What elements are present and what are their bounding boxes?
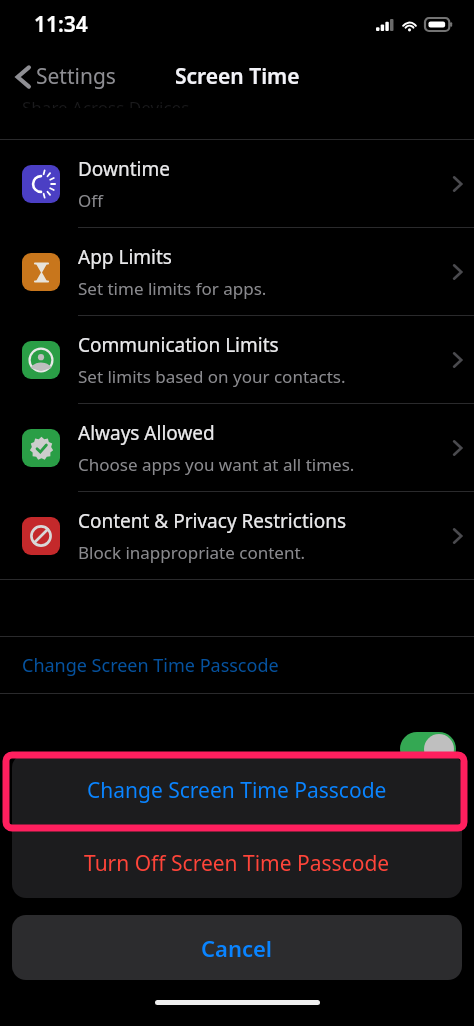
button[interactable]: Toggle — [400, 732, 456, 766]
staticText: Change Screen Time Passcode — [22, 653, 279, 678]
button[interactable]: Change Screen Time Passcode — [12, 754, 462, 827]
button[interactable]: Turn Off Screen Time Passcode — [12, 828, 462, 898]
staticText: Content & Privacy Restrictions — [78, 508, 346, 534]
staticText: Set time limits for apps. — [78, 277, 267, 300]
staticText: Communication Limits — [78, 332, 279, 358]
staticText: Set limits based on your contacts. — [78, 365, 346, 388]
button[interactable]: Back to Settings — [12, 58, 120, 95]
button[interactable]: Downtime — [0, 140, 474, 227]
staticText: Screen Time — [175, 62, 300, 91]
staticText: Change Screen Time Passcode — [87, 776, 387, 805]
staticText: Cancel — [201, 933, 273, 963]
button[interactable]: Cancel — [12, 915, 462, 980]
button[interactable]: App Limits — [0, 228, 474, 315]
button[interactable]: Communication Limits — [0, 316, 474, 403]
staticText: Settings — [36, 62, 116, 91]
staticText: Choose apps you want at all times. — [78, 453, 355, 476]
button[interactable]: Always Allowed — [0, 404, 474, 491]
staticText: Turn Off Screen Time — [22, 776, 200, 801]
staticText: Turn Off Screen Time Passcode — [84, 849, 390, 878]
staticText: Block inappropriate content. — [78, 541, 306, 564]
staticText: App Limits — [78, 244, 172, 270]
staticText: Downtime — [78, 156, 170, 182]
staticText: Always Allowed — [78, 420, 215, 446]
staticText: 11:34 — [34, 10, 88, 39]
staticText: Off — [78, 189, 103, 212]
button[interactable]: Change Screen Time Passcode — [0, 637, 474, 693]
staticText: Share Across Devices — [22, 96, 190, 108]
button[interactable]: Content & Privacy Restrictions — [0, 492, 474, 579]
